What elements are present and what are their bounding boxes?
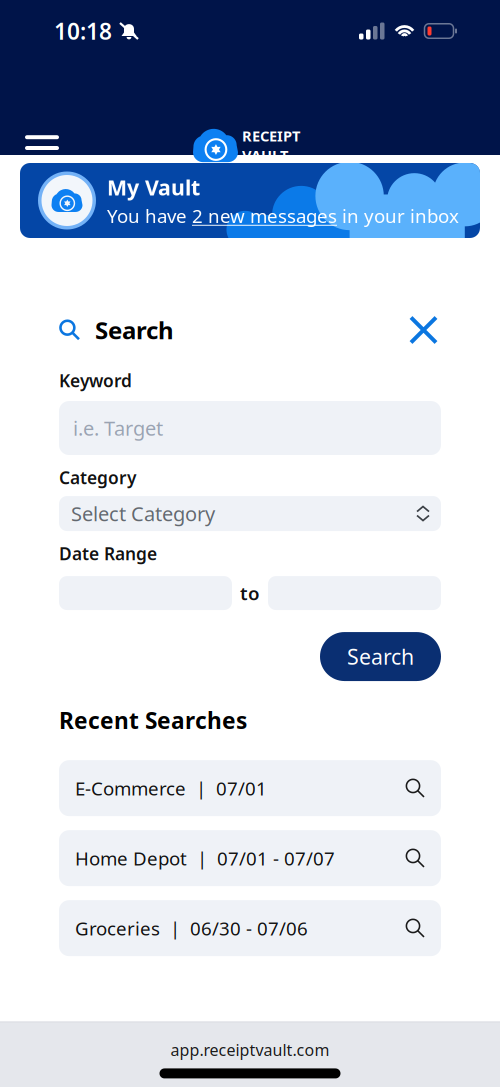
staticText: 10:18: [54, 16, 112, 46]
staticText: Search: [95, 314, 174, 346]
staticText: Select Category: [71, 500, 215, 527]
staticText: Recent Searches: [59, 705, 247, 735]
button[interactable]: Groceries | 06/30 - 07/06: [59, 900, 441, 956]
button[interactable]: My Vault: [20, 163, 480, 238]
button[interactable]: Menu: [18, 129, 66, 167]
staticText: E-Commerce | 07/01: [75, 776, 267, 801]
staticText: You have 2 new messages in your inbox: [107, 203, 459, 228]
staticText: Search: [347, 642, 414, 671]
staticText: Keyword: [59, 369, 132, 392]
button[interactable]: Search: [320, 632, 441, 681]
staticText: Groceries | 06/30 - 07/06: [75, 916, 308, 941]
staticText: Category: [59, 466, 136, 489]
staticText: RECEIPT: [242, 126, 300, 145]
staticText: Home Depot | 07/01 - 07/07: [75, 846, 335, 871]
staticText: VAULT: [242, 145, 288, 165]
button[interactable]: Home Depot | 07/01 - 07/07: [59, 830, 441, 886]
button[interactable]: E-Commerce | 07/01: [59, 760, 441, 816]
staticText: to: [240, 581, 260, 605]
staticText: i.e. Target: [73, 415, 163, 441]
staticText: My Vault: [107, 173, 200, 201]
staticText: Date Range: [59, 542, 157, 565]
button[interactable]: Close search: [406, 312, 441, 347]
staticText: app.receiptvault.com: [170, 1039, 329, 1060]
